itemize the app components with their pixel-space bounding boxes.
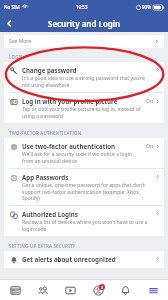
button[interactable]: Log in with your profile picture [4,93,164,123]
staticText: 3 [101,285,104,290]
button[interactable]: App Passwords [4,169,164,205]
staticText: 19:53 [76,4,88,10]
staticText: We'll ask for a security code if we noti… [22,151,144,164]
staticText: Get alerts about unrecognized [22,255,116,263]
staticText: Authorized Logins [22,210,78,218]
staticText: Review a list of devices where you won't… [22,219,153,232]
button[interactable]: Get alerts about unrecognized [4,251,164,268]
staticText: SETTING UP EXTRA SECURITY [9,243,76,249]
staticText: App Passwords [22,173,69,181]
staticText: Get a unique, one-time password for apps… [22,182,153,201]
staticText: Security and Login [48,18,121,29]
staticText: Tap or click your profile picture to log… [22,106,144,119]
button[interactable]: Friends [31,280,55,300]
button[interactable]: See More [4,35,164,48]
button[interactable]: Alerts [113,280,137,300]
button[interactable]: Use two-factor authentication [4,138,164,168]
staticText: It's a good idea to use a strong passwor… [22,75,153,88]
button[interactable]: Watch [58,280,82,300]
staticText: 90% [142,4,151,10]
button[interactable]: Menu [141,280,165,300]
staticText: Change password [22,66,77,74]
staticText: Log in with your profile picture [22,97,118,105]
staticText: On [146,143,153,150]
button[interactable]: News Feed [3,280,27,300]
staticText: On [146,98,153,105]
staticText: LOGIN [9,54,24,60]
staticText: No SIM [4,4,20,10]
button[interactable]: Authorized Logins [4,206,164,236]
button[interactable]: Notifications [86,280,110,300]
button[interactable]: Back [0,14,18,32]
staticText: Use two-factor authentication [22,142,116,150]
staticText: See More [9,38,32,45]
staticText: TWO-FACTOR AUTHENTICATION [9,130,82,136]
button[interactable]: Change password [4,62,164,92]
